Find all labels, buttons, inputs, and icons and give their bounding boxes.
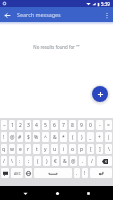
button[interactable]: 0 — [87, 120, 94, 130]
staticText: @ — [71, 158, 76, 165]
staticText: q — [2, 146, 6, 153]
button[interactable]: _ — [87, 132, 94, 142]
staticText: e — [19, 146, 22, 153]
staticText: 2 — [19, 122, 22, 129]
staticText: & — [63, 158, 67, 165]
button[interactable]: - — [96, 120, 103, 130]
button[interactable]: % — [33, 132, 40, 142]
button[interactable]: \ — [9, 156, 15, 166]
button[interactable]: ( — [34, 156, 41, 166]
button[interactable]: Emoji — [1, 168, 9, 178]
staticText: 1 — [11, 122, 14, 129]
staticText: . — [82, 158, 84, 165]
staticText: 6 — [53, 122, 56, 129]
button[interactable]: \ — [105, 144, 112, 154]
button[interactable]: + — [96, 132, 103, 142]
button[interactable]: ! — [82, 168, 88, 178]
button[interactable]: Recent apps — [82, 187, 94, 199]
button[interactable]: y — [42, 144, 49, 154]
staticText: o — [71, 146, 75, 153]
button[interactable]: 1 — [9, 120, 15, 130]
staticText: ( — [72, 134, 74, 141]
staticText: | — [107, 134, 110, 141]
button[interactable]: : — [17, 156, 23, 166]
button[interactable]: [ — [87, 144, 94, 154]
button[interactable]: e — [17, 144, 23, 154]
button[interactable]: ~ — [1, 120, 7, 130]
button[interactable]: t — [33, 144, 40, 154]
button[interactable]: ] — [96, 144, 103, 154]
staticText: ; — [28, 158, 30, 165]
button[interactable]: p — [78, 144, 85, 154]
button[interactable]: 9 — [78, 120, 85, 130]
button[interactable]: 6 — [51, 120, 58, 130]
staticText: # — [18, 134, 22, 141]
button[interactable]: Hide keyboard — [19, 187, 31, 199]
button[interactable]: ) — [43, 156, 50, 166]
staticText: 4 — [35, 122, 38, 129]
staticText: . — [76, 170, 78, 177]
button[interactable]: Back — [0, 8, 14, 22]
button[interactable]: 3 — [25, 120, 31, 130]
button[interactable]: | — [105, 132, 112, 142]
staticText: $ — [27, 134, 30, 141]
staticText: 9 — [80, 122, 83, 129]
staticText: € — [54, 158, 57, 165]
staticText: y — [44, 146, 47, 153]
staticText: - — [99, 122, 101, 129]
button[interactable]: ABC — [11, 168, 23, 178]
button[interactable]: / — [1, 156, 7, 166]
button[interactable]: ) — [78, 132, 85, 142]
button[interactable]: ! — [1, 132, 7, 142]
staticText: _ — [89, 134, 92, 141]
staticText: [ — [90, 146, 92, 153]
staticText: ~ — [3, 122, 6, 129]
button[interactable]: 8 — [69, 120, 76, 130]
button[interactable]: . — [79, 156, 86, 166]
button[interactable]: ( — [69, 132, 76, 142]
button[interactable]: Backspace — [97, 156, 112, 166]
button[interactable]: * — [60, 132, 67, 142]
staticText: = — [107, 122, 110, 129]
button[interactable]: q — [1, 144, 7, 154]
button[interactable]: @ — [70, 156, 77, 166]
staticText: r — [27, 146, 30, 153]
button[interactable]: & — [51, 132, 58, 142]
button[interactable]: 5 — [42, 120, 49, 130]
staticText: ) — [46, 158, 48, 165]
button[interactable]: u — [51, 144, 58, 154]
button[interactable]: Space — [34, 168, 72, 178]
button[interactable]: 2 — [17, 120, 23, 130]
button[interactable]: Home — [51, 187, 63, 199]
staticText: * — [62, 134, 65, 141]
button[interactable]: ^ — [42, 132, 49, 142]
staticText: u — [53, 146, 57, 153]
staticText: @ — [10, 134, 15, 141]
staticText: \ — [11, 158, 13, 165]
button[interactable]: Change language — [25, 168, 32, 178]
button[interactable]: Compose message — [92, 86, 108, 102]
button[interactable]: r — [25, 144, 31, 154]
button[interactable]: @ — [9, 132, 15, 142]
button[interactable]: 7 — [60, 120, 67, 130]
button[interactable]: € — [52, 156, 59, 166]
staticText: 7 — [62, 122, 65, 129]
button[interactable]: $ — [25, 132, 31, 142]
staticText: ] — [99, 146, 101, 153]
button[interactable]: o — [69, 144, 76, 154]
button[interactable]: Enter — [90, 168, 112, 178]
button[interactable]: . — [74, 168, 80, 178]
button[interactable]: / — [88, 156, 95, 166]
button[interactable]: # — [17, 132, 23, 142]
staticText: p — [80, 146, 84, 153]
button[interactable]: & — [61, 156, 68, 166]
staticText: : — [19, 158, 21, 165]
button[interactable]: i — [60, 144, 67, 154]
button[interactable]: More options — [101, 9, 113, 21]
staticText: \ — [108, 146, 110, 153]
button[interactable]: w — [9, 144, 15, 154]
button[interactable]: ; — [25, 156, 32, 166]
button[interactable]: = — [105, 120, 112, 130]
staticText: w — [10, 146, 14, 153]
button[interactable]: 4 — [33, 120, 40, 130]
